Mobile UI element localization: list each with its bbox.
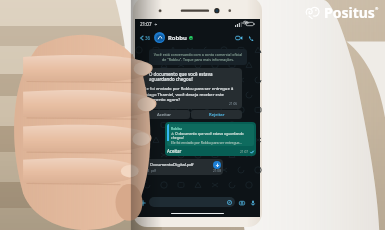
- staticText: 21:07: [140, 21, 152, 27]
- button[interactable]: Robbu: [168, 34, 234, 42]
- staticText: DocumentoDigital.pdf: [150, 162, 212, 168]
- button[interactable]: Camera: [237, 198, 246, 207]
- button[interactable]: Rejeitar: [191, 110, 242, 119]
- staticText: 21:08: [213, 169, 221, 173]
- staticText: Aceitar: [167, 148, 182, 154]
- other: Positus logo: [304, 4, 321, 21]
- staticText: 36: [145, 35, 151, 41]
- staticText: 24 KB pdf: [141, 169, 156, 173]
- button[interactable]: DocumentoDigital.pdf: [139, 159, 223, 175]
- button[interactable]: ⚠️: [139, 68, 242, 109]
- button[interactable]: Attach: [138, 198, 147, 207]
- button[interactable]: Video call: [234, 33, 244, 43]
- staticText: ⚠️: [143, 71, 148, 76]
- button[interactable]: Você está conversando com a conta comerc…: [149, 49, 247, 65]
- staticText: Positus: [324, 3, 375, 22]
- button[interactable]: [149, 197, 235, 207]
- button[interactable]: Voice call: [246, 33, 256, 43]
- button[interactable]: Robbu: [165, 122, 256, 156]
- staticText: Robbu: [171, 126, 182, 131]
- button[interactable]: Aceitar: [139, 110, 190, 119]
- staticText: Robbu: [168, 34, 187, 42]
- staticText: O documento que você estava aguardando c…: [149, 71, 238, 83]
- staticText: Aceitar: [157, 112, 172, 118]
- button[interactable]: Download document: [213, 161, 221, 169]
- staticText: Ele foi enviado por Robbu para ser entre…: [143, 86, 238, 102]
- button[interactable]: Back: [139, 35, 152, 41]
- staticText: Rejeitar: [209, 112, 225, 118]
- staticText: Ele foi enviado por Robbu para ser entre…: [171, 140, 242, 144]
- staticText: 21:07: [240, 150, 249, 154]
- button[interactable]: Voice message: [248, 198, 257, 207]
- button[interactable]: Profile photo: [154, 32, 165, 43]
- staticText: Você está conversando com a conta comerc…: [153, 52, 243, 62]
- staticText: 21:06: [229, 102, 238, 106]
- staticText: ⚠️ O documento que você estava aguardand…: [171, 131, 252, 140]
- staticText: ®: [375, 6, 379, 11]
